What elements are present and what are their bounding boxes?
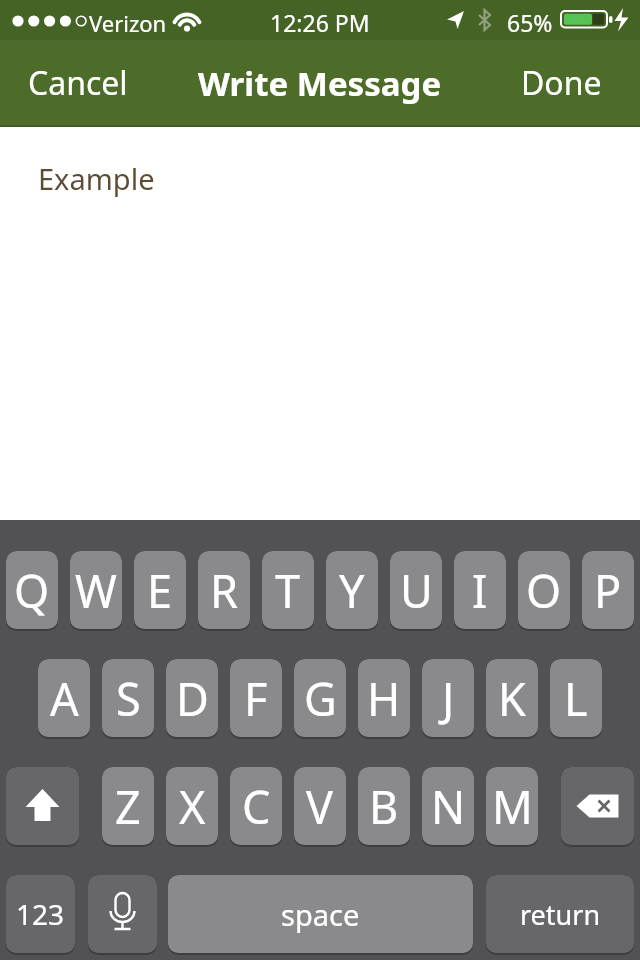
staticText: W — [75, 560, 117, 621]
button[interactable]: L — [550, 659, 602, 737]
staticText: N — [431, 776, 466, 837]
button[interactable]: return — [486, 875, 634, 953]
button[interactable]: A — [38, 659, 90, 737]
staticText: G — [304, 668, 337, 729]
button[interactable]: V — [294, 767, 346, 845]
button[interactable]: Y — [326, 551, 378, 629]
staticText: R — [210, 560, 238, 621]
button[interactable]: S — [102, 659, 154, 737]
button[interactable]: T — [262, 551, 314, 629]
staticText: C — [242, 776, 271, 837]
staticText: Cancel — [28, 61, 128, 105]
staticText: H — [367, 668, 401, 729]
button[interactable]: G — [294, 659, 346, 737]
button[interactable]: N — [422, 767, 474, 845]
staticText: O — [526, 560, 562, 621]
staticText: return — [520, 896, 601, 933]
staticText: 123 — [16, 895, 65, 933]
staticText: Verizon — [89, 8, 167, 38]
staticText: D — [176, 668, 209, 729]
staticText: Z — [115, 776, 141, 837]
button[interactable]: K — [486, 659, 538, 737]
staticText: U — [400, 560, 433, 621]
button[interactable]: Q — [6, 551, 58, 629]
staticText: M — [492, 776, 533, 837]
button[interactable]: J — [422, 659, 474, 737]
staticText: Y — [339, 560, 365, 621]
button[interactable]: E — [134, 551, 186, 629]
button[interactable]: F — [230, 659, 282, 737]
button[interactable]: C — [230, 767, 282, 845]
button[interactable]: Cancel — [20, 53, 136, 113]
button[interactable]: space — [168, 875, 473, 953]
staticText: S — [116, 668, 141, 729]
button[interactable]: M — [486, 767, 538, 845]
staticText: F — [244, 668, 268, 729]
button[interactable] — [88, 875, 157, 953]
staticText: E — [147, 560, 173, 621]
staticText: Q — [14, 560, 50, 621]
staticText: T — [275, 560, 301, 621]
button[interactable]: W — [70, 551, 122, 629]
staticText: Write Message — [198, 61, 442, 106]
staticText: Done — [521, 61, 602, 105]
button[interactable]: X — [166, 767, 218, 845]
staticText: 12:26 PM — [270, 7, 370, 38]
button[interactable]: U — [390, 551, 442, 629]
staticText: A — [50, 668, 79, 729]
staticText: X — [179, 776, 206, 837]
staticText: K — [498, 668, 526, 729]
button[interactable]: R — [198, 551, 250, 629]
staticText: 65% — [507, 7, 553, 38]
staticText: space — [281, 895, 360, 934]
staticText: L — [564, 668, 588, 729]
button[interactable]: P — [582, 551, 634, 629]
button[interactable]: 123 — [6, 875, 75, 953]
button[interactable]: B — [358, 767, 410, 845]
button[interactable] — [561, 767, 634, 845]
button[interactable]: O — [518, 551, 570, 629]
button[interactable]: H — [358, 659, 410, 737]
button[interactable] — [6, 767, 79, 845]
staticText: V — [306, 776, 334, 837]
staticText: Example — [38, 159, 155, 198]
staticText: J — [442, 668, 455, 729]
staticText: B — [369, 776, 399, 837]
button[interactable]: Z — [102, 767, 154, 845]
button[interactable]: D — [166, 659, 218, 737]
staticText: P — [594, 560, 622, 621]
button[interactable]: Done — [513, 53, 610, 113]
button[interactable]: I — [454, 551, 506, 629]
staticText: I — [472, 560, 488, 621]
